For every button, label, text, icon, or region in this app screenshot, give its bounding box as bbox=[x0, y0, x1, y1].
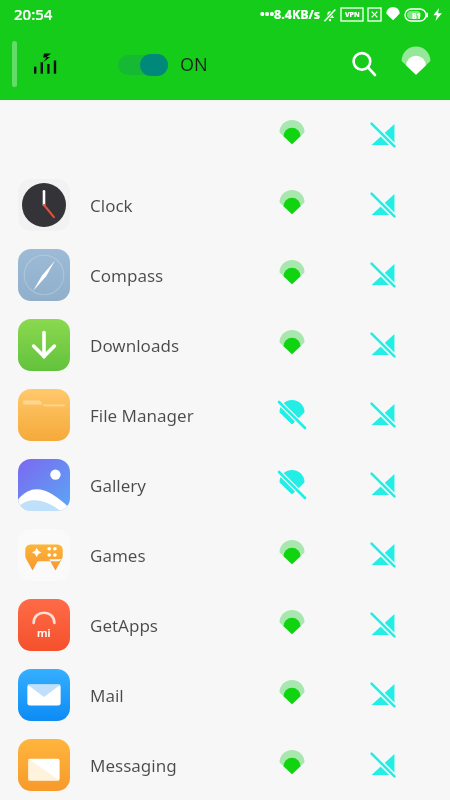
staticText: VPN bbox=[345, 10, 360, 20]
staticText: Downloads bbox=[90, 334, 180, 357]
button[interactable]: Mobile data blocked bbox=[367, 259, 399, 291]
button[interactable]: Wi-Fi bbox=[394, 42, 438, 86]
button[interactable]: Messaging bbox=[0, 730, 450, 800]
button[interactable]: mi bbox=[0, 590, 450, 660]
button[interactable]: Mobile data blocked bbox=[367, 329, 399, 361]
button[interactable]: File Manager bbox=[0, 380, 450, 450]
button[interactable]: Mobile data blocked bbox=[367, 189, 399, 221]
staticText: Clock bbox=[90, 194, 133, 217]
staticText: Games bbox=[90, 544, 146, 567]
button[interactable]: Wi-Fi allowed bbox=[276, 329, 308, 361]
button[interactable]: Toggle all Wi-Fi bbox=[276, 119, 308, 151]
button[interactable]: ON bbox=[118, 52, 208, 77]
button[interactable]: Gallery bbox=[0, 450, 450, 520]
button[interactable]: Mobile data blocked bbox=[367, 749, 399, 781]
button[interactable]: Downloads bbox=[0, 310, 450, 380]
staticText: GetApps bbox=[90, 614, 159, 637]
staticText: Messaging bbox=[90, 754, 177, 777]
button[interactable]: Wi-Fi allowed bbox=[276, 259, 308, 291]
button[interactable]: Wi-Fi allowed bbox=[276, 539, 308, 571]
staticText: ON bbox=[180, 52, 208, 77]
button[interactable]: Wi-Fi allowed bbox=[276, 679, 308, 711]
button[interactable]: Compass bbox=[0, 240, 450, 310]
button[interactable]: Mobile data blocked bbox=[367, 609, 399, 641]
staticText: Compass bbox=[90, 264, 164, 287]
button[interactable]: Wi-Fi blocked bbox=[276, 469, 308, 501]
button[interactable]: Mobile data blocked bbox=[367, 399, 399, 431]
button[interactable]: Traffic stats bbox=[22, 42, 66, 86]
staticText: mi bbox=[37, 625, 51, 640]
button[interactable]: Toggle all mobile data bbox=[367, 119, 399, 151]
button[interactable]: Wi-Fi allowed bbox=[276, 189, 308, 221]
button[interactable]: Mobile data blocked bbox=[367, 539, 399, 571]
button[interactable]: Mail bbox=[0, 660, 450, 730]
button[interactable]: Wi-Fi allowed bbox=[276, 609, 308, 641]
button[interactable]: Mobile data blocked bbox=[367, 469, 399, 501]
staticText: •••8.4KB/s bbox=[260, 6, 320, 23]
staticText: 20:54 bbox=[14, 4, 53, 24]
button[interactable]: Search bbox=[342, 42, 386, 86]
staticText: Mail bbox=[90, 684, 124, 707]
staticText: Gallery bbox=[90, 474, 146, 497]
button[interactable]: Clock bbox=[0, 170, 450, 240]
staticText: File Manager bbox=[90, 404, 194, 427]
button[interactable]: Wi-Fi allowed bbox=[276, 749, 308, 781]
button[interactable]: Mobile data blocked bbox=[367, 679, 399, 711]
staticText: 81 bbox=[412, 10, 422, 21]
button[interactable]: Wi-Fi blocked bbox=[276, 399, 308, 431]
button[interactable]: Games bbox=[0, 520, 450, 590]
